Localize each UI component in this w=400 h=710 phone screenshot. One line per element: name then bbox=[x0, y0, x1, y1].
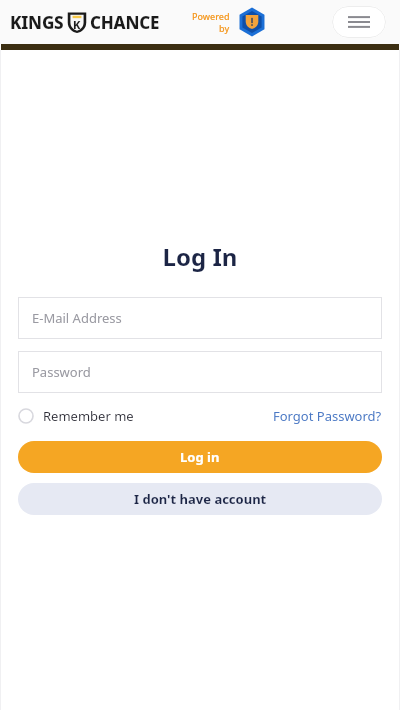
staticText: KINGS bbox=[10, 11, 64, 34]
button[interactable]: Log in bbox=[18, 441, 382, 473]
button[interactable]: Password bbox=[18, 351, 382, 393]
button[interactable]: Remember me bbox=[18, 407, 134, 425]
staticText: Log In bbox=[18, 240, 382, 273]
staticText: E-Mail Address bbox=[32, 309, 122, 327]
staticText: K bbox=[73, 17, 81, 32]
button[interactable]: Forgot Password? bbox=[273, 407, 382, 425]
button[interactable]: I don't have account bbox=[18, 483, 382, 515]
staticText: CHANCE bbox=[90, 11, 160, 34]
staticText: Password bbox=[32, 363, 91, 381]
button[interactable]: E-Mail Address bbox=[18, 297, 382, 339]
button[interactable]: Open menu bbox=[332, 6, 386, 38]
staticText: Forgot Password? bbox=[273, 407, 382, 425]
staticText: by bbox=[219, 22, 230, 34]
other: Security provider bbox=[237, 7, 267, 37]
staticText: Log in bbox=[180, 448, 220, 466]
staticText: Remember me bbox=[43, 407, 134, 425]
staticText: Powered bbox=[192, 10, 230, 22]
staticText: I don't have account bbox=[134, 490, 267, 508]
